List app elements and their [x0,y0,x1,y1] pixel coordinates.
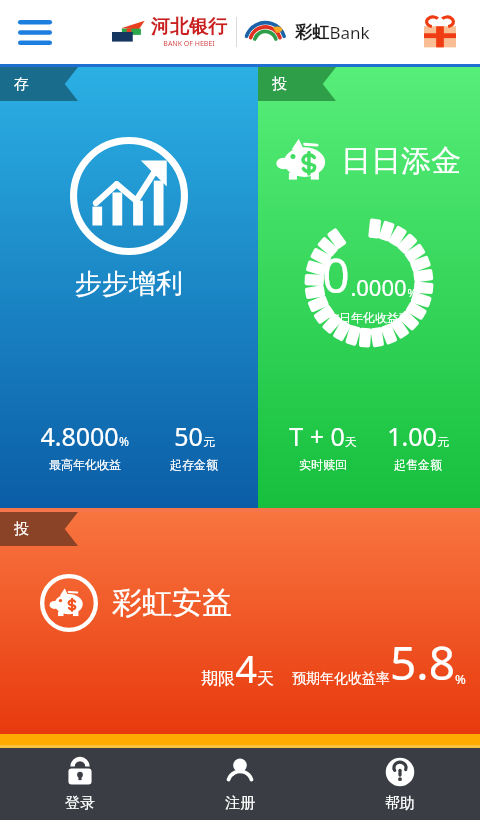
button[interactable]: Gifts [424,16,456,48]
staticText: 彩虹安益 [112,584,232,622]
button[interactable]: 投 [0,512,480,734]
button[interactable]: Login [0,749,160,819]
button[interactable]: Register [160,749,320,819]
staticText: Bank [329,21,370,44]
other: Help [383,755,417,789]
staticText: 5.8 [390,631,455,694]
staticText: 天 [257,668,274,689]
staticText: 注册 [225,794,255,813]
staticText: 0 [322,242,350,307]
staticText: 帮助 [385,794,415,813]
staticText: BANK OF HEBEI [163,39,215,49]
staticText: 1.00 [387,419,437,453]
staticText: 50 [174,419,203,453]
staticText: % [119,433,129,449]
staticText: 4 [235,642,257,694]
staticText: 天 [345,434,357,449]
staticText: 投 [14,520,29,539]
staticText: T + 0 [289,419,345,453]
staticText: 河北银行 [151,15,227,39]
other: Register [223,755,257,789]
staticText: 步步增利 [75,267,183,301]
staticText: % [407,285,417,300]
staticText: 最高年化收益 [49,457,121,472]
staticText: 存 [14,75,29,94]
staticText: 实时赎回 [299,457,347,472]
staticText: 4.8000 [40,419,119,453]
staticText: 元 [437,434,449,449]
staticText: 预期年化收益率 [292,670,390,688]
staticText: 投 [272,75,287,94]
button[interactable]: 存 [0,67,258,508]
staticText: 起存金额 [170,457,218,472]
staticText: 起售金额 [394,457,442,472]
staticText: 元 [203,434,215,449]
button[interactable]: Menu [18,20,52,45]
other: Login [63,755,97,789]
button[interactable]: Help [320,749,480,819]
button[interactable]: 投 [258,67,480,508]
staticText: 彩虹 [295,22,329,43]
staticText: 日日添金 [341,142,461,180]
staticText: 登录 [65,794,95,813]
staticText: 期限 [201,668,235,689]
staticText: .0000 [350,272,407,302]
staticText: % [455,670,466,688]
staticText: 七日年化收益率 [327,310,411,325]
